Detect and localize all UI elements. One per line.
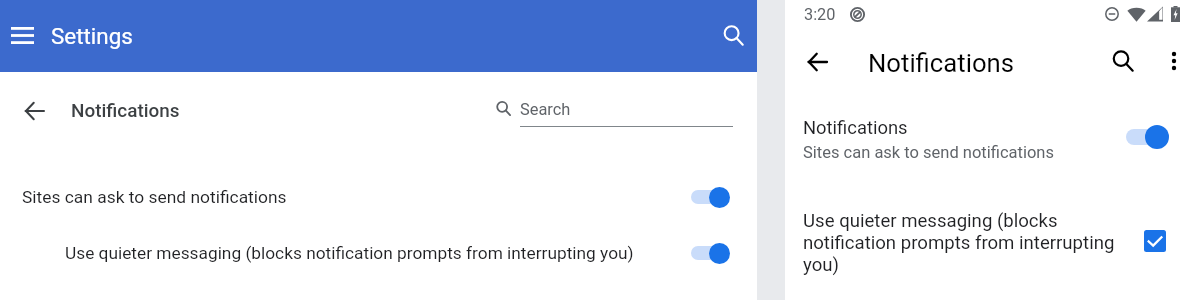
button[interactable]: Use quieter messaging, on [690,241,734,265]
button[interactable]: Search [1103,41,1143,81]
staticText: Notifications [71,99,180,121]
button[interactable]: Notifications [785,110,1200,170]
button[interactable]: Menu [5,18,39,52]
button[interactable]: Use quieter messaging, checked [1144,230,1166,252]
button[interactable]: Use quieter messaging (blocks notificati… [0,234,757,272]
button[interactable]: Back [17,94,51,128]
staticText: Notifications [868,48,1015,78]
staticText: Notifications [803,117,908,139]
staticText: 3:20 [804,5,836,24]
button[interactable]: Use quieter messaging (blocks notificati… [785,205,1200,285]
button[interactable]: More options [1154,41,1194,81]
staticText: Search [520,100,571,119]
staticText: Use quieter messaging (blocks notificati… [65,243,634,263]
staticText: Sites can ask to send notifications [803,143,1054,162]
staticText: Use quieter messaging (blocks notificati… [803,210,1123,276]
button[interactable]: Back [797,42,837,82]
staticText: Settings [51,23,133,49]
button[interactable]: Notifications, on [1125,124,1175,150]
button[interactable]: Sites can ask to send notifications, on [690,185,734,209]
button[interactable]: Search [715,17,751,53]
staticText: Sites can ask to send notifications [22,187,287,207]
button[interactable]: Sites can ask to send notifications [0,178,757,216]
